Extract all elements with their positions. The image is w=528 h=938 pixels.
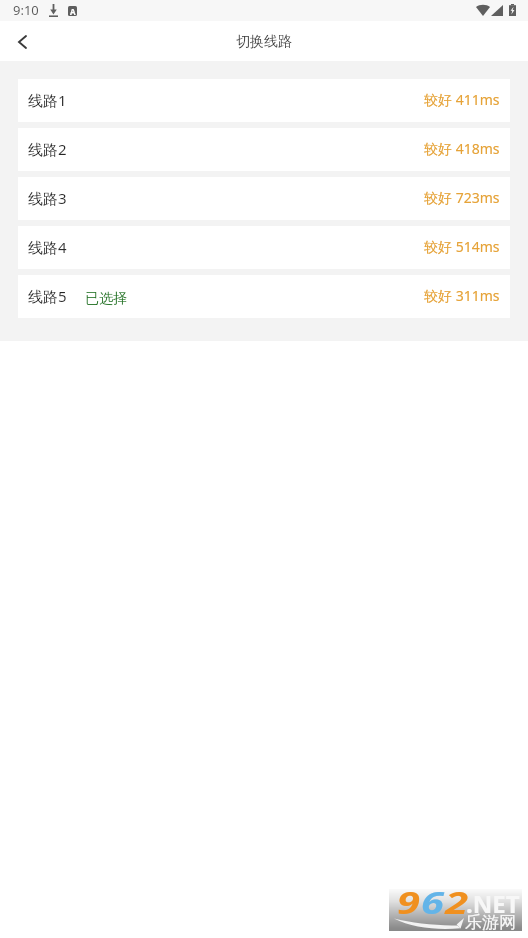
staticText: 线路5: [28, 286, 67, 306]
button[interactable]: 线路3: [18, 177, 510, 220]
staticText: 9:10: [13, 1, 39, 19]
button[interactable]: Back: [0, 21, 40, 61]
staticText: 乐游网: [465, 912, 516, 933]
staticText: 2: [445, 881, 469, 923]
staticText: 较好 514ms: [424, 237, 500, 256]
staticText: 线路1: [28, 90, 67, 110]
staticText: 已选择: [85, 290, 127, 308]
staticText: 6: [421, 881, 445, 923]
staticText: 较好 411ms: [424, 90, 500, 109]
staticText: 切换线路: [236, 33, 292, 51]
staticText: 线路4: [28, 237, 67, 257]
staticText: 较好 723ms: [424, 188, 500, 207]
button[interactable]: 线路5: [18, 275, 510, 318]
button[interactable]: 线路4: [18, 226, 510, 269]
staticText: A: [70, 6, 76, 16]
staticText: .NET: [466, 887, 520, 920]
staticText: 线路3: [28, 188, 67, 208]
staticText: 较好 418ms: [424, 139, 500, 158]
staticText: 较好 311ms: [424, 286, 500, 305]
button[interactable]: 线路2: [18, 128, 510, 171]
staticText: 线路2: [28, 139, 67, 159]
button[interactable]: 线路1: [18, 79, 510, 122]
staticText: 9: [397, 881, 421, 923]
